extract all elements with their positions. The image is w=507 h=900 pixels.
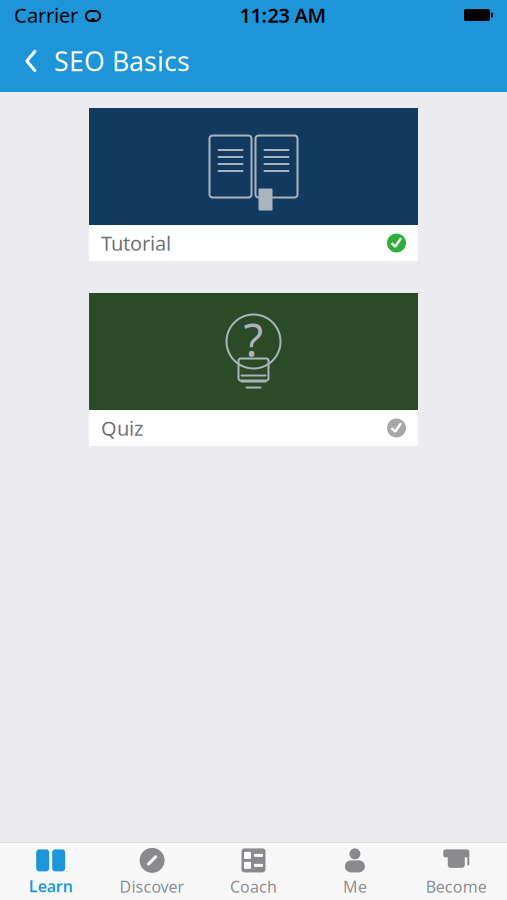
staticText: ?	[243, 309, 263, 370]
button[interactable]: Me	[304, 840, 406, 900]
button[interactable]: Learn	[0, 840, 101, 900]
staticText: SEO Basics	[54, 43, 190, 79]
staticText: Me	[343, 876, 367, 897]
staticText: Quiz	[101, 415, 143, 441]
staticText: Become	[426, 876, 487, 897]
staticText: Discover	[120, 876, 185, 897]
button[interactable]: Back	[14, 39, 48, 83]
button[interactable]: Coach	[203, 840, 304, 900]
button[interactable]: ?	[89, 293, 418, 446]
button[interactable]: Tutorial	[89, 108, 418, 261]
staticText: Learn	[29, 875, 73, 897]
staticText: Coach	[230, 876, 277, 897]
button[interactable]: Become	[406, 840, 507, 900]
button[interactable]: Discover	[101, 840, 203, 900]
staticText: Tutorial	[101, 230, 171, 256]
staticText: Carrier	[14, 2, 78, 28]
staticText: 11:23 AM	[239, 2, 326, 28]
